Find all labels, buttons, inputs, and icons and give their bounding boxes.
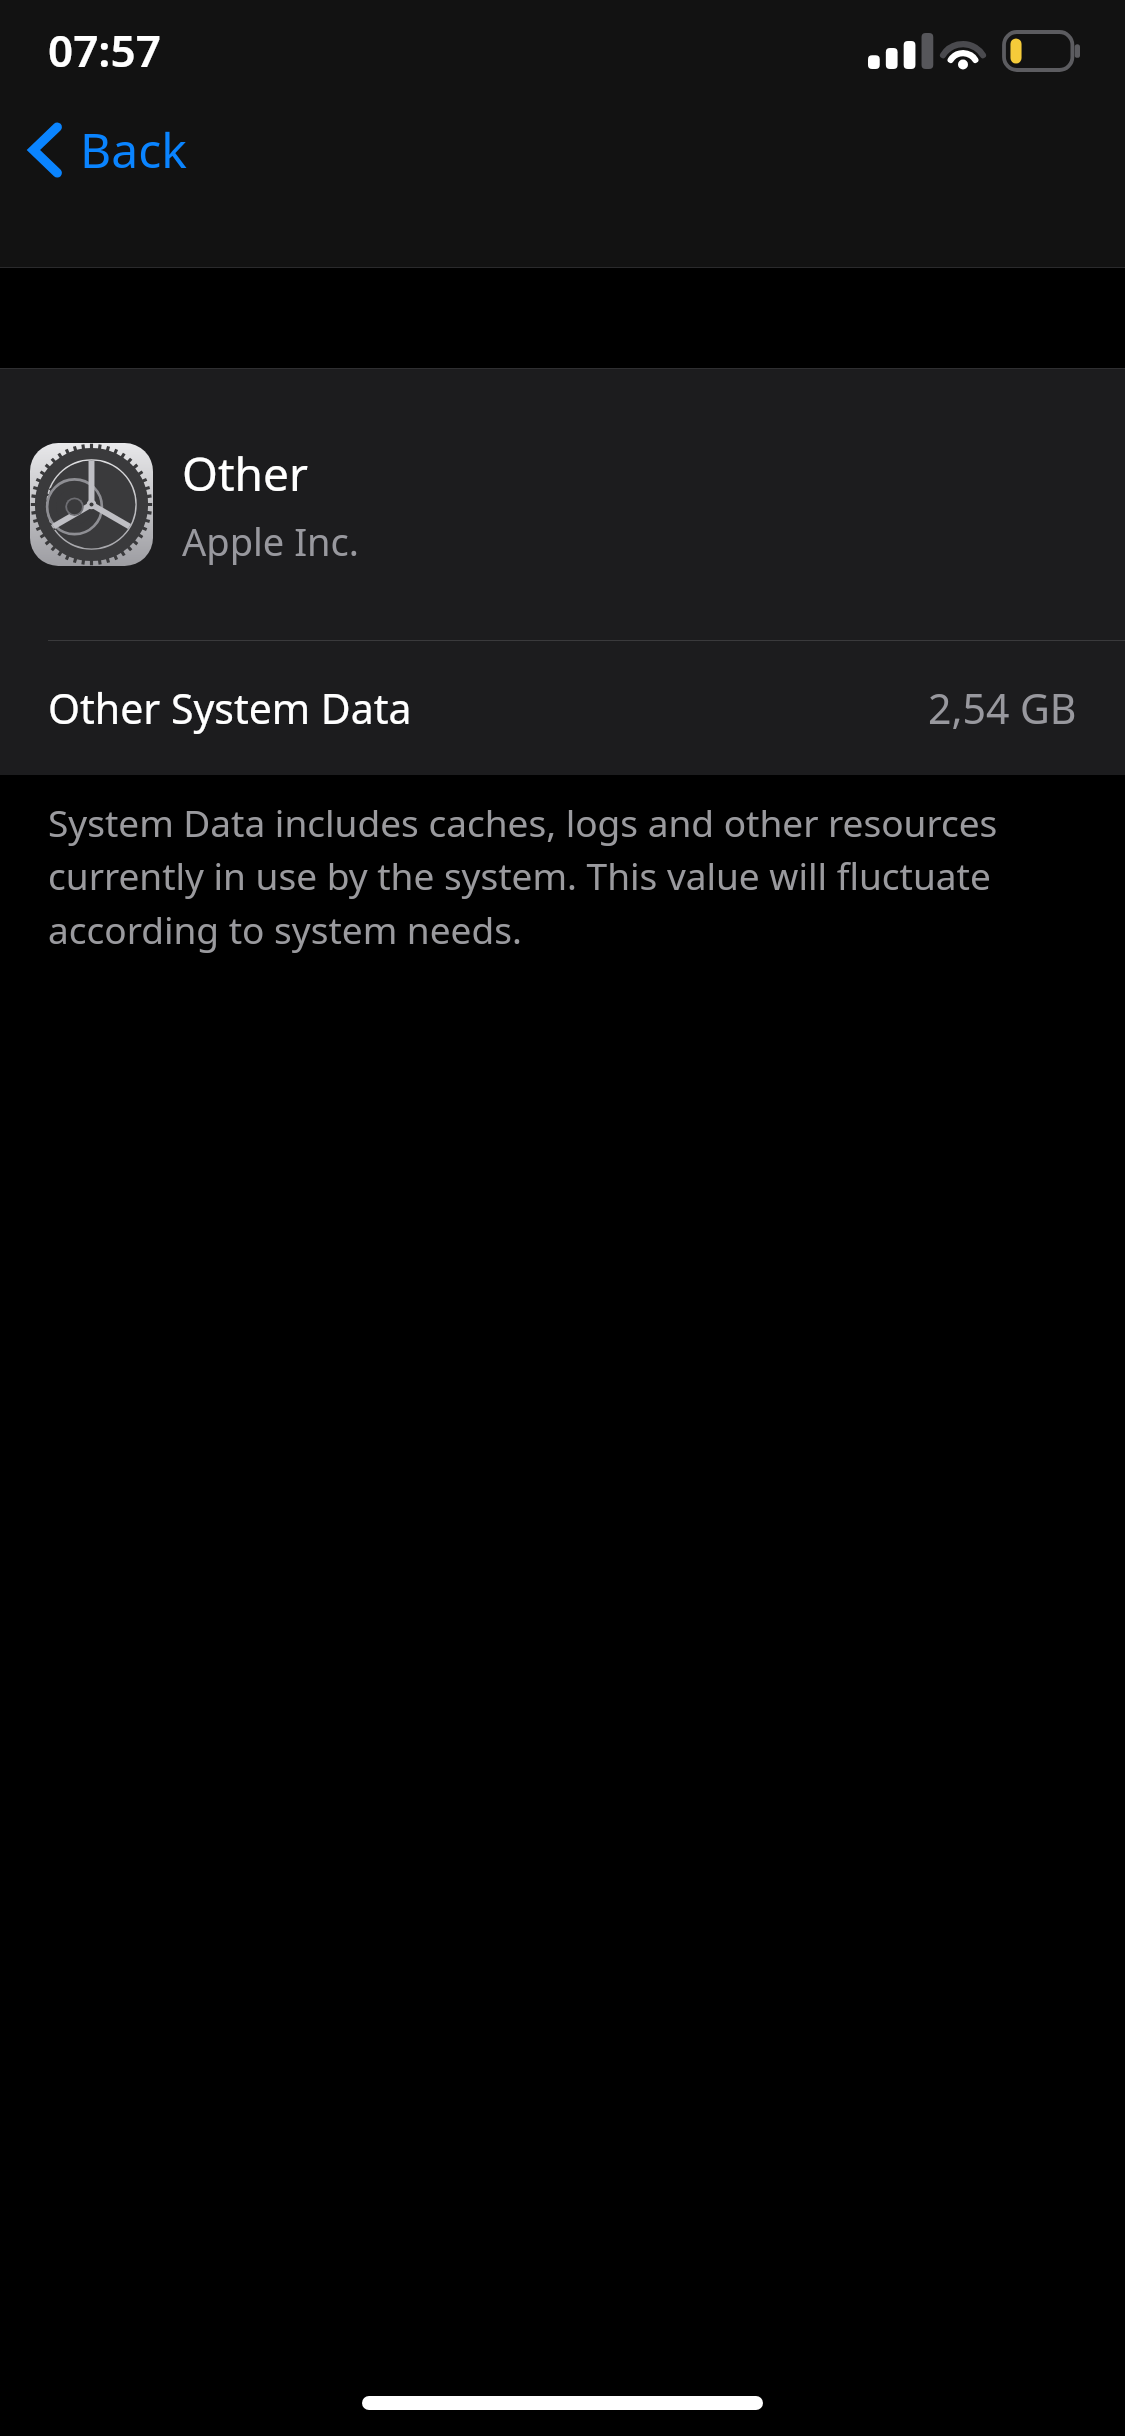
staticText: Back bbox=[80, 117, 187, 182]
other: Back bbox=[28, 122, 62, 178]
staticText: System Data includes caches, logs and ot… bbox=[48, 797, 1067, 955]
staticText: 2,54 GB bbox=[928, 680, 1077, 736]
button[interactable]: Other System Data bbox=[0, 641, 1125, 775]
staticText: 07:57 bbox=[48, 20, 161, 80]
staticText: Other bbox=[182, 442, 308, 505]
button[interactable]: Other bbox=[0, 369, 1125, 640]
staticText: Other System Data bbox=[48, 680, 412, 736]
staticText: Apple Inc. bbox=[182, 515, 359, 567]
button[interactable]: Back bbox=[18, 109, 197, 190]
